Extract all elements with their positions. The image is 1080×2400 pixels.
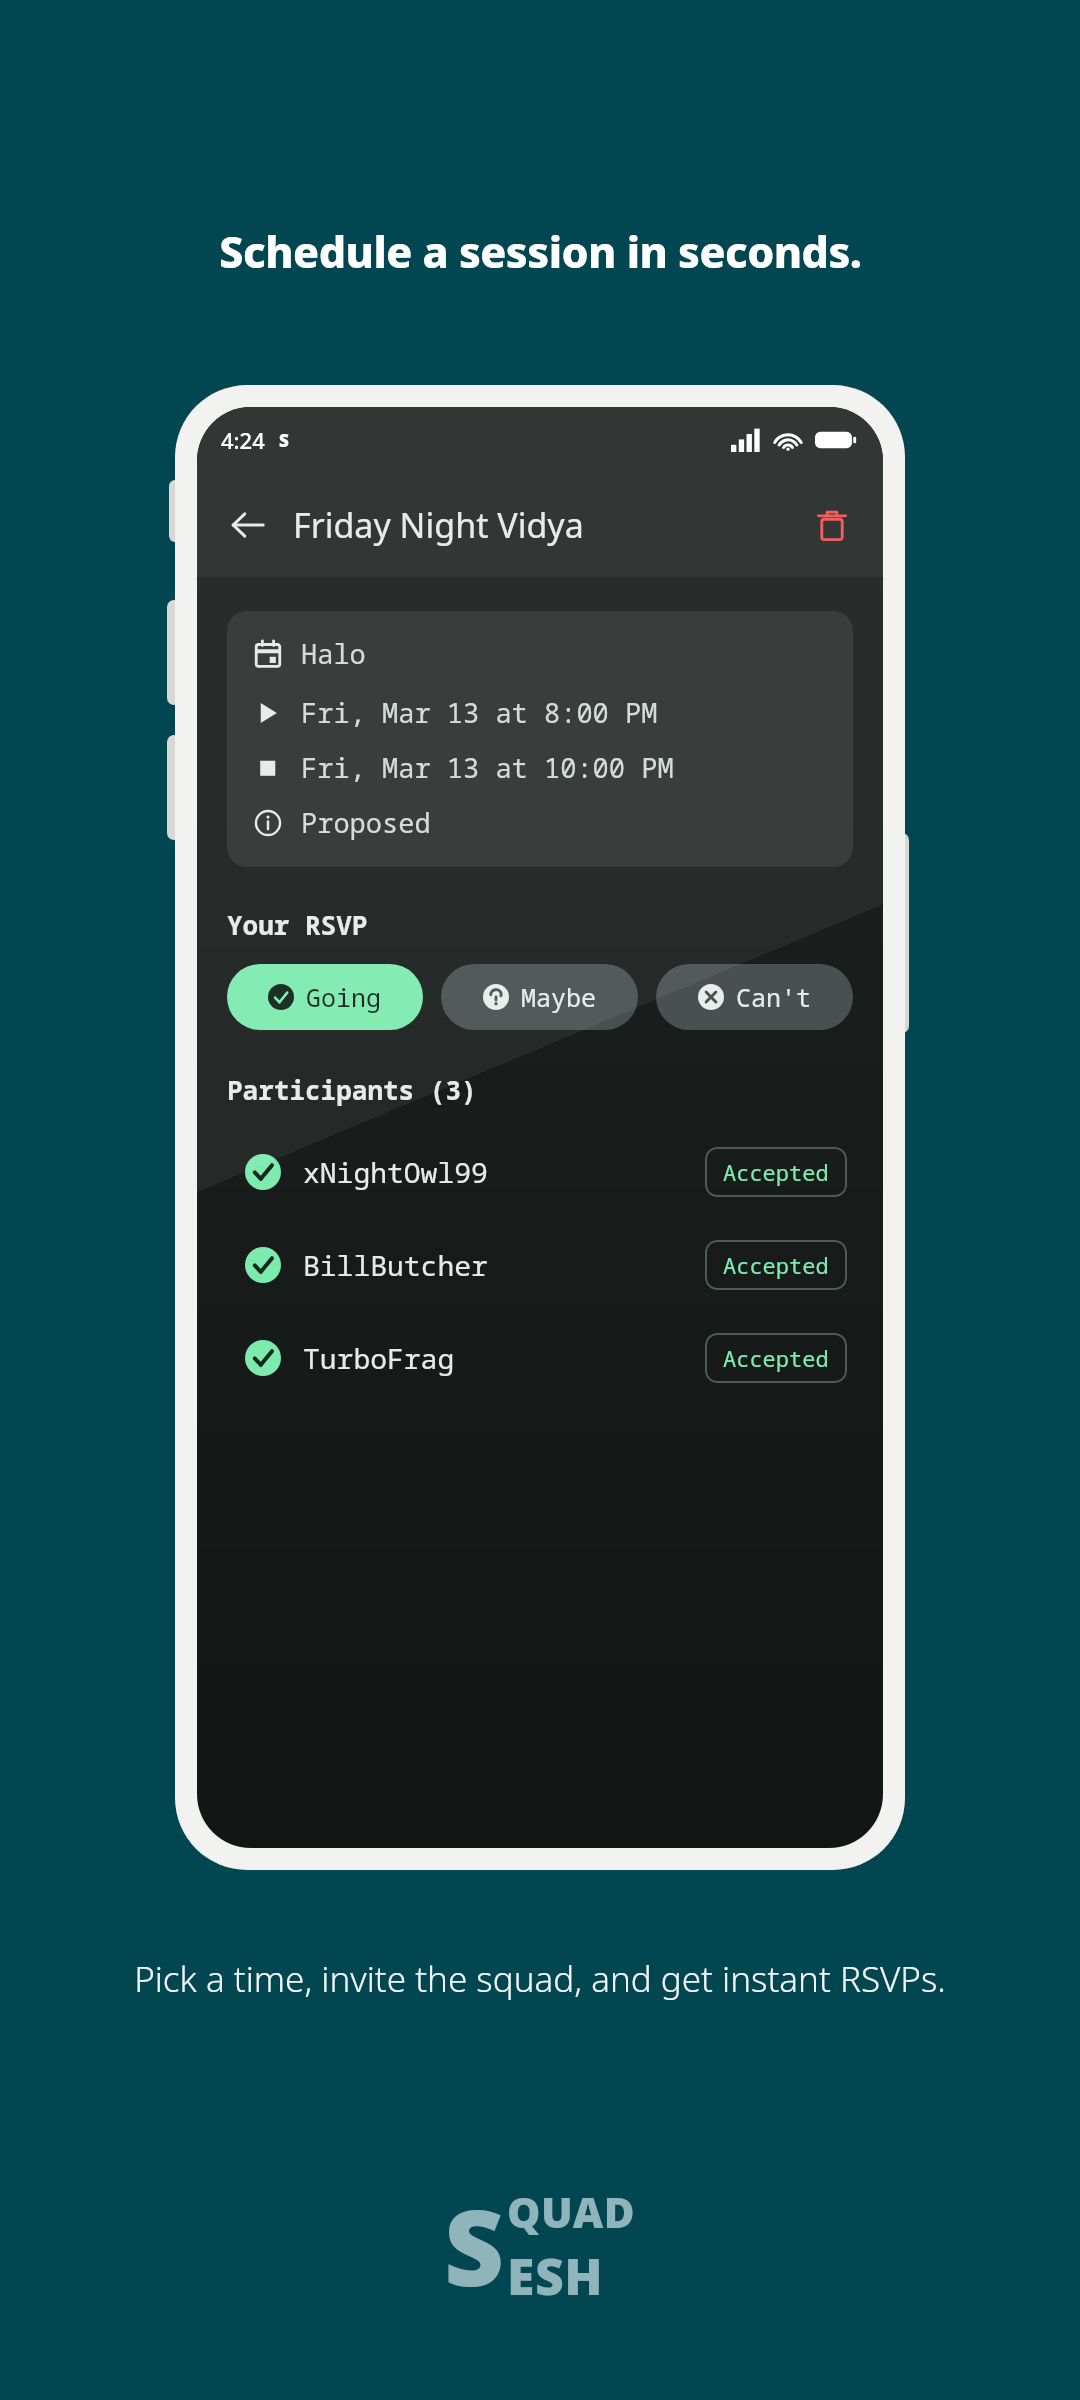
staticText: Your RSVP	[227, 907, 368, 942]
staticText: Maybe	[521, 980, 597, 1014]
button[interactable]: Can't	[656, 964, 853, 1030]
staticText: Accepted	[723, 1250, 829, 1280]
staticText: Going	[306, 980, 382, 1014]
staticText: Accepted	[723, 1157, 829, 1187]
button[interactable]: xNightOwl99	[227, 1125, 853, 1218]
staticText: S	[279, 429, 289, 452]
staticText: BillButcher	[303, 1246, 488, 1284]
staticText: ESH	[507, 2242, 604, 2310]
staticText: Schedule a session in seconds.	[219, 222, 862, 281]
button[interactable]: Maybe	[441, 964, 638, 1030]
staticText: Can't	[736, 980, 812, 1014]
staticText: Accepted	[723, 1343, 829, 1373]
staticText: Pick a time, invite the squad, and get i…	[134, 1955, 946, 2003]
staticText: QUAD	[507, 2183, 636, 2240]
staticText: Halo	[301, 635, 366, 672]
button[interactable]: Halo	[227, 611, 853, 867]
button[interactable]: BillButcher	[227, 1218, 853, 1311]
staticText: Fri, Mar 13 at 8:00 PM	[301, 694, 658, 731]
staticText: Fri, Mar 13 at 10:00 PM	[301, 749, 674, 786]
staticText: Proposed	[301, 804, 431, 841]
staticText: TurboFrag	[303, 1339, 455, 1377]
button[interactable]: Going	[227, 964, 423, 1030]
button[interactable]: TurboFrag	[227, 1311, 853, 1404]
staticText: xNightOwl99	[303, 1153, 488, 1191]
button[interactable]: Back	[215, 492, 281, 558]
button[interactable]: Delete session	[799, 492, 865, 558]
staticText: 4:24	[221, 425, 265, 455]
staticText: S	[444, 2175, 505, 2317]
staticText: Participants (3)	[227, 1072, 477, 1107]
staticText: Friday Night Vidya	[293, 502, 584, 548]
